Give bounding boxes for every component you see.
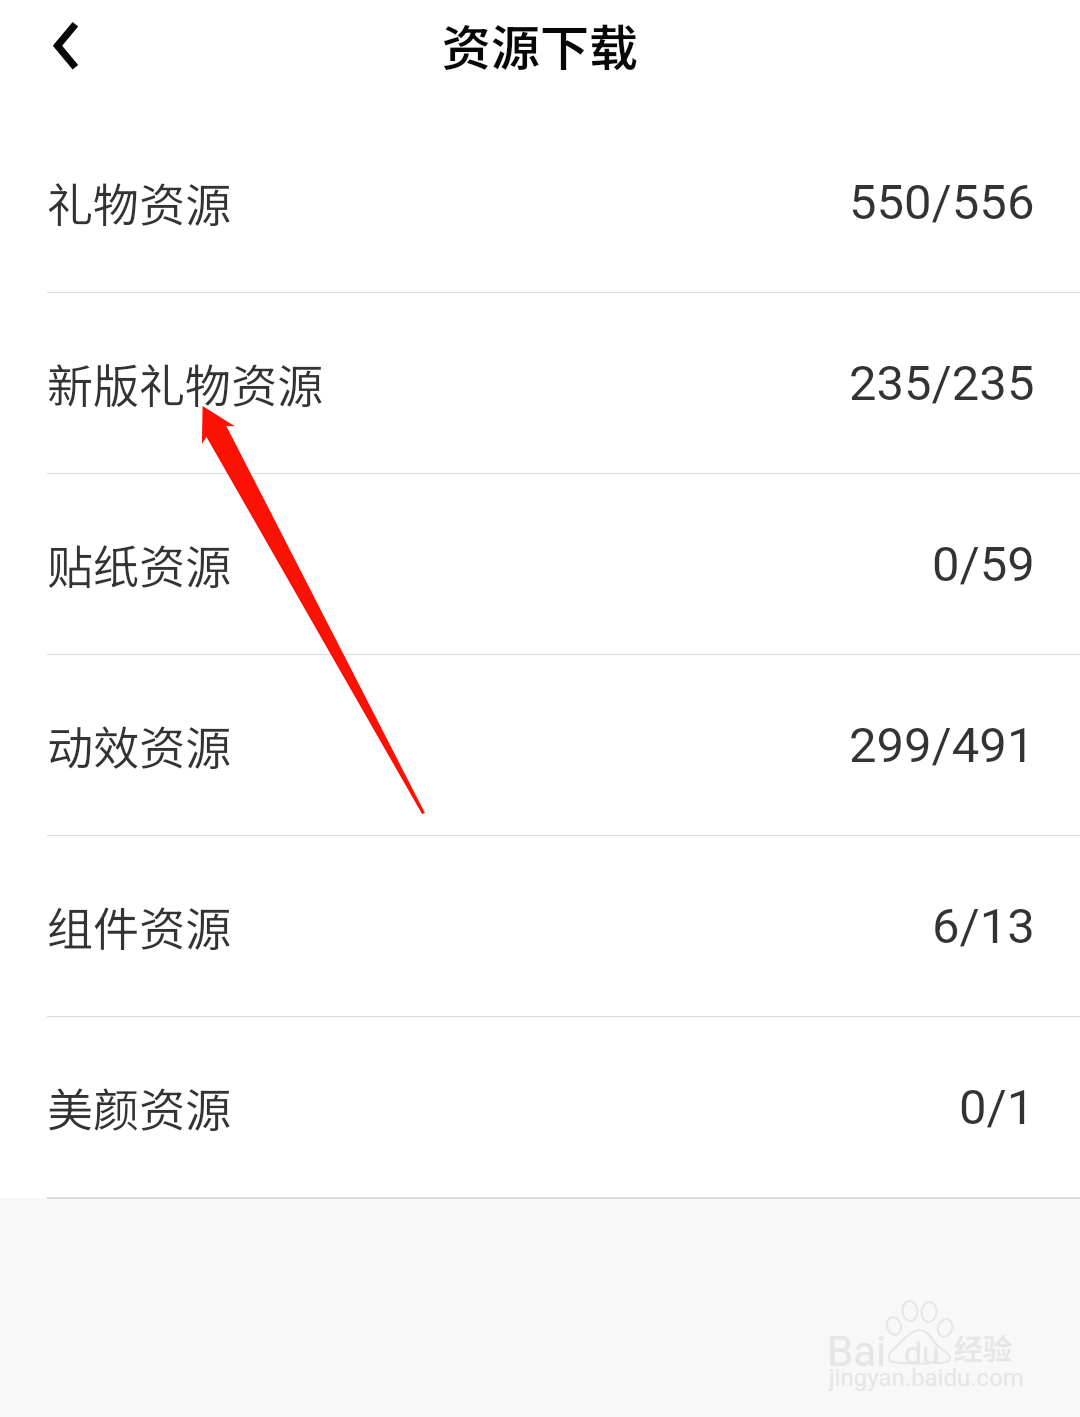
staticText: 550/556 <box>849 174 1035 231</box>
staticText: 美颜资源 <box>47 1074 231 1141</box>
staticText: 礼物资源 <box>47 169 231 236</box>
button[interactable]: 组件资源 <box>0 836 1080 1017</box>
staticText: 资源下载 <box>442 9 639 80</box>
staticText: Bai <box>827 1327 887 1376</box>
staticText: 动效资源 <box>47 712 231 779</box>
staticText: du <box>904 1334 940 1372</box>
staticText: 235/235 <box>849 355 1035 412</box>
button[interactable]: 美颜资源 <box>0 1017 1080 1198</box>
staticText: 经验 <box>954 1326 1013 1368</box>
staticText: 0/1 <box>959 1079 1035 1136</box>
staticText: 299/491 <box>849 717 1035 774</box>
staticText: 贴纸资源 <box>47 531 231 598</box>
button[interactable]: 新版礼物资源 <box>0 293 1080 474</box>
staticText: 新版礼物资源 <box>47 350 323 417</box>
staticText: jingyan.baidu.com <box>829 1364 1024 1392</box>
button[interactable]: 贴纸资源 <box>0 474 1080 655</box>
button[interactable]: Back <box>25 6 105 86</box>
staticText: 0/59 <box>932 536 1035 593</box>
staticText: 6/13 <box>932 898 1035 955</box>
staticText: 组件资源 <box>47 893 231 960</box>
button[interactable]: 动效资源 <box>0 655 1080 836</box>
button[interactable]: 礼物资源 <box>0 112 1080 293</box>
